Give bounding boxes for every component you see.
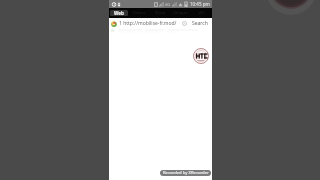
staticText: Recorded by XRecorder xyxy=(163,170,209,176)
button[interactable]: All xyxy=(192,10,211,16)
other: Site icon xyxy=(111,21,117,27)
staticText: Search xyxy=(192,20,208,27)
staticText: Web xyxy=(114,10,124,16)
button[interactable]: Shop xyxy=(150,10,169,16)
staticText: 4G xyxy=(165,2,171,7)
button[interactable]: Bookmark xyxy=(181,20,188,27)
staticText: 10:45 pm xyxy=(190,1,210,7)
staticText: Shop xyxy=(155,10,165,16)
button[interactable]: Search xyxy=(191,18,209,29)
staticText: 1 http://mobilise-fr.mod/sfd xyxy=(119,20,180,27)
button[interactable]: Videos xyxy=(130,10,148,16)
staticText: All xyxy=(199,10,204,16)
button[interactable]: Images xyxy=(171,10,190,16)
staticText: Images xyxy=(173,10,188,16)
staticText: Videos xyxy=(132,10,146,16)
button[interactable]: Web xyxy=(110,10,128,16)
